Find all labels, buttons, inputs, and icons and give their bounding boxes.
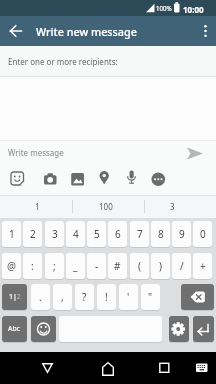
button[interactable]: 3 (136, 196, 208, 217)
button[interactable] (152, 356, 175, 379)
staticText: ; (53, 259, 56, 273)
button[interactable]: : (23, 253, 42, 279)
staticText: ? (82, 290, 87, 304)
staticText: " (148, 290, 153, 304)
staticText: , (61, 290, 64, 304)
button[interactable]: 1 (1, 196, 73, 217)
button[interactable]: Enter one or more recipients: (0, 46, 216, 76)
button[interactable]: 7 (130, 221, 149, 247)
staticText: 1|2 (9, 292, 21, 302)
staticText: 0 (200, 227, 206, 241)
staticText: ( (138, 259, 141, 273)
button[interactable]: " (141, 284, 160, 310)
button[interactable] (41, 168, 61, 188)
staticText: 1 (35, 201, 40, 212)
staticText: ! (105, 290, 108, 304)
button[interactable]: + (193, 253, 212, 279)
staticText: 5 (94, 227, 100, 241)
button[interactable]: . (31, 284, 50, 310)
button[interactable] (196, 19, 216, 43)
button[interactable] (149, 168, 169, 188)
staticText: ' (127, 290, 130, 304)
button[interactable] (122, 168, 142, 188)
button[interactable]: 1 (2, 221, 21, 247)
button[interactable] (192, 358, 211, 377)
staticText: 6 (115, 227, 121, 241)
button[interactable]: ) (151, 253, 170, 279)
button[interactable]: - (87, 253, 106, 279)
staticText: 1 (9, 227, 15, 241)
staticText: . (39, 290, 42, 304)
staticText: - (95, 259, 99, 273)
button[interactable]: 0 (193, 221, 212, 247)
button[interactable] (96, 356, 119, 379)
staticText: 4 (73, 227, 79, 241)
staticText: 2 (30, 227, 36, 241)
button[interactable]: / (172, 253, 191, 279)
staticText: + (200, 259, 206, 273)
button[interactable] (181, 284, 214, 310)
button[interactable]: ( (130, 253, 149, 279)
button[interactable] (2, 284, 27, 310)
button[interactable] (193, 316, 214, 342)
button[interactable]: Abc (2, 316, 27, 342)
button[interactable]: 5 (87, 221, 106, 247)
staticText: 100 (99, 201, 113, 212)
staticText: _ (73, 259, 78, 273)
button[interactable]: 6 (108, 221, 127, 247)
staticText: @ (7, 259, 16, 273)
staticText: 3 (170, 201, 175, 212)
button[interactable] (95, 168, 115, 188)
staticText: 7 (137, 227, 143, 241)
staticText: ) (159, 259, 162, 273)
button[interactable] (4, 19, 28, 43)
button[interactable]: 4 (66, 221, 85, 247)
button[interactable] (183, 144, 207, 164)
button[interactable] (8, 168, 28, 188)
staticText: 9 (179, 227, 185, 241)
button[interactable]: 3 (45, 221, 64, 247)
button[interactable] (169, 316, 189, 342)
staticText: # (114, 259, 121, 273)
staticText: Abc (8, 324, 21, 334)
staticText: : (31, 259, 34, 273)
staticText: 10:00 (183, 4, 204, 15)
button[interactable]: ; (45, 253, 64, 279)
button[interactable] (68, 168, 88, 188)
button[interactable]: 8 (151, 221, 170, 247)
button[interactable]: ! (97, 284, 116, 310)
button[interactable]: ' (119, 284, 138, 310)
button[interactable] (36, 356, 59, 379)
button[interactable]: # (108, 253, 127, 279)
button[interactable] (31, 316, 56, 342)
button[interactable]: _ (66, 253, 85, 279)
staticText: 100% (156, 4, 172, 12)
staticText: 3 (52, 227, 58, 241)
staticText: Write message (8, 147, 64, 158)
staticText: 8 (158, 227, 164, 241)
staticText: / (180, 259, 184, 273)
button[interactable]: 100 (70, 196, 142, 217)
staticText: Enter one or more recipients: (8, 56, 118, 67)
button[interactable]: 9 (172, 221, 191, 247)
button[interactable]: 2 (23, 221, 42, 247)
button[interactable]: ? (75, 284, 94, 310)
staticText: Write new message (36, 24, 137, 39)
button[interactable]: , (53, 284, 72, 310)
button[interactable] (0, 141, 180, 163)
button[interactable]: @ (2, 253, 21, 279)
